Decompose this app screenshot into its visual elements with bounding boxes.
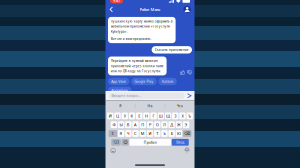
button[interactable]: Х (179, 112, 186, 119)
button[interactable]: О (154, 121, 160, 128)
button[interactable]: Й (107, 112, 113, 119)
staticText: мобильном приложении «Госуслуги (111, 24, 170, 29)
button[interactable]: В (125, 121, 131, 128)
staticText: П (141, 122, 144, 127)
staticText: Ы (120, 122, 123, 127)
staticText: У (124, 113, 126, 119)
button[interactable]: Щ (165, 112, 171, 119)
button[interactable]: Back (107, 5, 116, 14)
button[interactable]: Г (150, 112, 157, 119)
button[interactable]: На (135, 100, 165, 111)
button[interactable]: Ь (161, 130, 168, 137)
staticText: приложений через кнопки ниже (111, 64, 164, 68)
button[interactable]: Ю (176, 130, 182, 137)
staticText: Перейдите в нужный магазин (111, 59, 158, 63)
staticText: Г (153, 113, 155, 119)
button[interactable]: П (140, 121, 146, 128)
staticText: И (148, 131, 151, 136)
staticText: ⇧ (111, 131, 115, 136)
button[interactable]: App Store (108, 78, 129, 85)
staticText: Х (181, 113, 183, 119)
button[interactable]: Т (154, 130, 160, 137)
button[interactable]: Б (168, 130, 175, 137)
staticText: К (130, 113, 133, 119)
button[interactable]: Ж (176, 121, 182, 128)
staticText: Ю (177, 131, 181, 136)
staticText: Е (138, 113, 140, 119)
staticText: 9:41 (113, 0, 120, 3)
staticText: Пробел (144, 140, 157, 145)
button[interactable]: И (147, 130, 153, 137)
button[interactable]: Ввод (172, 139, 189, 146)
button[interactable]: Я (105, 100, 135, 111)
button[interactable]: Э (183, 121, 189, 128)
staticText: Д (170, 122, 173, 127)
staticText: Р (149, 122, 151, 127)
staticText: В (127, 122, 130, 127)
button[interactable]: Д (168, 121, 175, 128)
staticText: Ц (116, 113, 119, 119)
button[interactable]: З (172, 112, 178, 119)
button[interactable]: Пробел (129, 139, 171, 146)
button[interactable]: К (129, 112, 135, 119)
button[interactable]: ☺ (122, 139, 129, 146)
button[interactable]: Л (161, 121, 168, 128)
button[interactable]: Account (181, 5, 193, 14)
button[interactable]: Е (136, 112, 142, 119)
staticText: Ч (127, 131, 130, 136)
button[interactable]: Dislike (187, 70, 192, 75)
staticText: Й (109, 113, 112, 119)
staticText: Э (185, 122, 188, 127)
button[interactable]: Скачать приложение (152, 46, 192, 53)
button[interactable]: Ш (158, 112, 164, 119)
staticText: А (134, 122, 137, 127)
staticText: Скачать приложение (155, 48, 189, 52)
staticText: AppGallery (111, 88, 128, 93)
staticText: ⌫ (184, 131, 190, 136)
button[interactable]: Like (180, 70, 185, 75)
button[interactable]: У (121, 112, 128, 119)
button[interactable]: AppGallery (108, 87, 131, 94)
staticText: RuStore (162, 79, 174, 84)
button[interactable]: Google Play (131, 78, 157, 85)
staticText: Ввод (176, 140, 184, 144)
button[interactable]: Ъ (186, 112, 193, 119)
staticText: Ш (159, 113, 163, 119)
staticText: Б (171, 131, 173, 136)
button[interactable]: Н (143, 112, 150, 119)
staticText: App Store (111, 79, 126, 84)
button[interactable]: Введите запрос… (109, 93, 185, 99)
button[interactable]: Emoji keyboard (105, 146, 121, 155)
button[interactable]: Ц (114, 112, 121, 119)
staticText: На (147, 104, 152, 108)
button[interactable]: Ч (125, 130, 131, 137)
staticText: ☺ (123, 140, 127, 145)
staticText: Я (119, 104, 121, 108)
staticText: З (174, 113, 176, 119)
button[interactable]: С (132, 130, 139, 137)
staticText: С (134, 131, 137, 136)
button[interactable]: Р (147, 121, 153, 128)
button[interactable]: Ф (111, 121, 117, 128)
staticText: Ж (177, 122, 181, 127)
button[interactable]: Что (165, 100, 194, 111)
staticText: Пушкинскую карту можно оформить в (111, 19, 173, 23)
button[interactable]: RuStore (158, 78, 177, 85)
staticText: 123 (113, 140, 119, 144)
button[interactable]: ⌫ (183, 130, 191, 137)
button[interactable]: Dictate (180, 146, 194, 155)
staticText: Ь (163, 131, 165, 136)
staticText: или по QR-коду на Госуслугах (111, 69, 161, 73)
staticText: Ъ (188, 113, 191, 119)
button[interactable]: Send (185, 92, 194, 99)
button[interactable]: Ы (118, 121, 124, 128)
staticText: Робот Макс (139, 7, 160, 12)
button[interactable]: А (132, 121, 139, 128)
staticText: Т (156, 131, 158, 136)
button[interactable]: 123 (111, 139, 121, 146)
staticText: Что (177, 104, 183, 108)
button[interactable]: М (140, 130, 146, 137)
button[interactable]: Я (118, 130, 124, 137)
button[interactable]: ⇧ (109, 130, 117, 137)
staticText: Щ (166, 113, 170, 119)
